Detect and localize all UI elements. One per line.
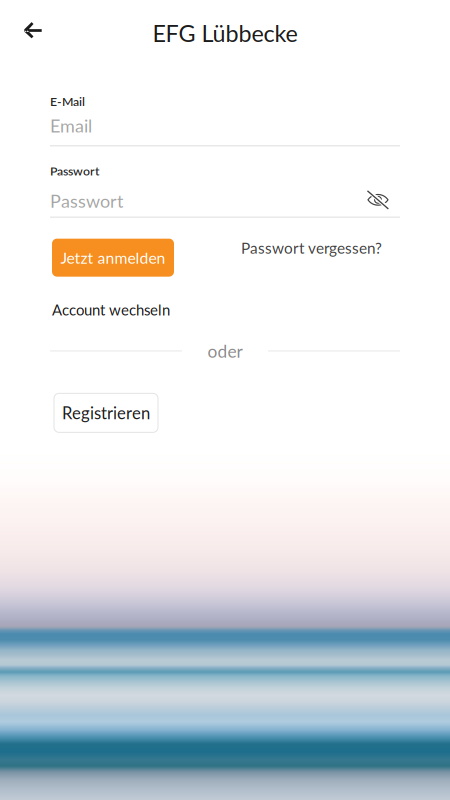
staticText: E-Mail: [50, 94, 85, 109]
button[interactable]: Passwort vergessen?: [241, 239, 382, 257]
staticText: Registrieren: [62, 403, 150, 423]
staticText: EFG Lübbecke: [152, 19, 297, 47]
button[interactable]: Passwort anzeigen: [367, 191, 389, 209]
staticText: Account wechseln: [52, 301, 170, 318]
button[interactable]: Jetzt anmelden: [52, 239, 174, 277]
staticText: Jetzt anmelden: [60, 248, 165, 267]
button[interactable]: Account wechseln: [52, 301, 170, 318]
staticText: Passwort: [50, 190, 123, 212]
staticText: Email: [50, 115, 92, 136]
button[interactable]: Zurück: [11, 8, 55, 52]
staticText: oder: [207, 341, 242, 361]
button[interactable]: Registrieren: [54, 393, 158, 432]
staticText: Passwort vergessen?: [241, 239, 382, 257]
staticText: Passwort: [50, 163, 99, 178]
